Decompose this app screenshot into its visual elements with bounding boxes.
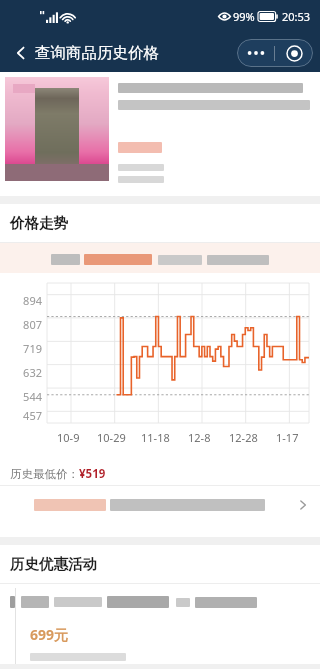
staticText: 查询商品历史价格 xyxy=(35,43,159,63)
button[interactable] xyxy=(0,72,320,196)
button[interactable]: 699元 xyxy=(0,584,320,664)
staticText: 719 xyxy=(23,341,42,356)
staticText: 632 xyxy=(23,365,42,380)
button[interactable]: More xyxy=(237,39,274,67)
staticText: 699元 xyxy=(30,625,69,644)
staticText: 99% xyxy=(233,9,255,24)
button[interactable] xyxy=(0,486,320,524)
staticText: 历史优惠活动 xyxy=(10,555,97,573)
button[interactable]: Close xyxy=(275,39,313,67)
staticText: 894 xyxy=(23,293,42,308)
staticText: 544 xyxy=(23,389,42,404)
staticText: 20:53 xyxy=(282,9,311,24)
staticText: 12-8 xyxy=(188,430,211,445)
staticText: ¥519 xyxy=(79,466,106,482)
staticText: 10-9 xyxy=(57,430,80,445)
staticText: 1-17 xyxy=(276,430,299,445)
staticText: 价格走势 xyxy=(10,214,68,232)
button[interactable]: Back xyxy=(6,38,36,68)
staticText: 457 xyxy=(23,408,42,423)
staticText: 历史最低价： xyxy=(10,467,79,481)
staticText: 11-18 xyxy=(141,430,170,445)
staticText: 807 xyxy=(23,317,42,332)
staticText: 12-28 xyxy=(229,430,258,445)
staticText: 10-29 xyxy=(97,430,126,445)
